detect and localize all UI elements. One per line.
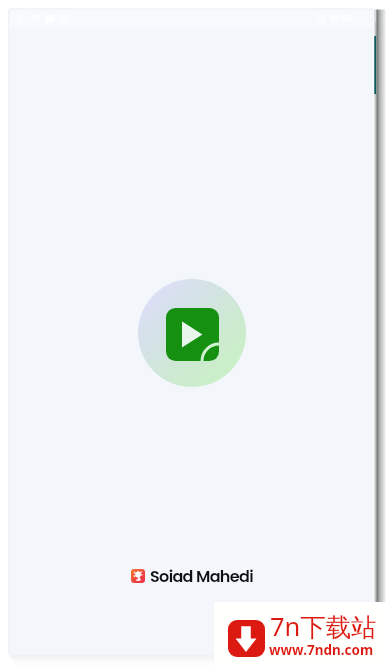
staticText: www.7ndn.com xyxy=(269,641,374,659)
other: App logo xyxy=(138,279,246,387)
button[interactable]: Soiad Mahedi xyxy=(131,565,253,587)
staticText: Soiad Mahedi xyxy=(150,565,253,587)
staticText: 7n下载站 xyxy=(270,609,377,644)
